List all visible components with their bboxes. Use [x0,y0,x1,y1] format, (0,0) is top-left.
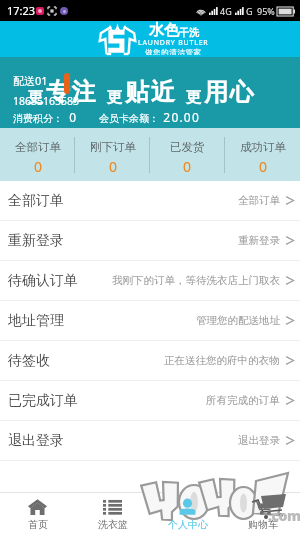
staticText: 消费积分： [13,112,63,125]
staticText: 退出登录 [238,434,280,447]
staticText: 刚下订单 [90,140,136,154]
staticText: LAUNDRY BUTLER [138,38,209,48]
staticText: 配送01 [13,73,48,88]
button[interactable]: 重新登录 [0,221,300,261]
staticText: 4G [220,5,232,17]
staticText: 专注 [46,77,98,107]
button[interactable]: 地址管理 [0,301,300,341]
staticText: 购物车 [248,518,278,531]
staticText: 全部订单 [15,140,61,154]
staticText: 0 [259,157,268,176]
staticText: 重新登录 [238,234,280,247]
staticText: G [246,5,253,17]
staticText: 更 [28,88,43,107]
staticText: 待签收 [8,352,50,370]
staticText: 待确认订单 [8,272,78,290]
button[interactable]: 个人中心 [150,493,225,533]
staticText: 重新登录 [8,232,64,250]
staticText: 更 [107,88,122,107]
staticText: 成功订单 [240,140,286,154]
staticText: 17:23 [7,3,36,18]
staticText: 全部订单 [238,194,280,207]
staticText: 会员卡余额： [99,112,159,125]
button[interactable]: 退出登录 [0,421,300,461]
staticText: 首页 [28,518,48,531]
button[interactable]: 已发货 [150,128,225,181]
button[interactable]: 购物车 [225,493,300,533]
staticText: 18655165583 [13,94,80,108]
staticText: 所有完成的订单 [206,394,280,407]
staticText: 贴近 [125,77,177,107]
staticText: 0 [34,157,43,176]
staticText: 洗衣篮 [98,518,128,531]
staticText: 更 [186,88,201,107]
button[interactable]: 全部订单 [0,181,300,221]
staticText: 水色 [149,21,179,40]
button[interactable]: 刚下订单 [75,128,150,181]
staticText: 全部订单 [8,192,64,210]
button[interactable]: 洗衣篮 [75,493,150,533]
staticText: 管理您的配送地址 [196,314,280,327]
button[interactable]: 待确认订单 [0,261,300,301]
staticText: 做您的清洁管家 [145,48,202,55]
staticText: 已发货 [170,140,205,154]
staticText: 0 [63,109,77,125]
staticText: 20.00 [159,109,200,125]
button[interactable]: 首页 [0,493,75,533]
button[interactable]: 待签收 [0,341,300,381]
staticText: 正在送往您的府中的衣物 [164,354,280,367]
button[interactable]: 已完成订单 [0,381,300,421]
staticText: 我刚下的订单，等待洗衣店上门取衣 [112,274,280,287]
staticText: 0 [183,157,192,176]
staticText: 个人中心 [168,518,208,531]
staticText: 干洗 [179,26,199,39]
staticText: 0 [109,157,118,176]
button[interactable]: 全部订单 [0,128,75,181]
staticText: .com [268,506,300,525]
staticText: 退出登录 [8,432,64,450]
button[interactable]: 成功订单 [225,128,300,181]
staticText: 用心 [204,77,256,107]
staticText: 地址管理 [8,312,64,330]
staticText: 已完成订单 [8,392,78,410]
staticText: 95% [257,5,275,17]
